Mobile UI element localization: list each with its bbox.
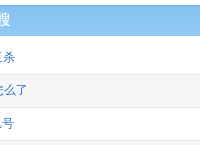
staticText: 新闻网页贴吧搜 xyxy=(0,11,11,29)
button[interactable]: 你到底是怎么了 xyxy=(0,75,200,107)
staticText: 网友神回复杀 xyxy=(0,49,15,64)
staticText: 你到底是怎么了 xyxy=(0,82,28,97)
button[interactable]: 请输入您的手机号 xyxy=(0,108,200,140)
staticText: 请输入您的手机号 xyxy=(0,115,14,130)
button[interactable]: 新闻网页贴吧搜 xyxy=(0,5,200,36)
button[interactable]: 网友神回复杀 xyxy=(0,42,200,74)
